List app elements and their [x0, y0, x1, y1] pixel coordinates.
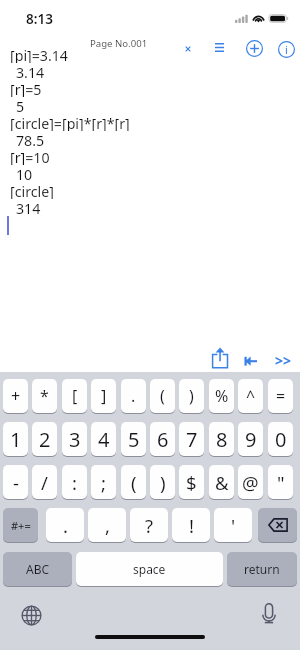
staticText: * — [40, 385, 49, 407]
staticText: & — [215, 470, 229, 495]
staticText: 314 — [16, 199, 41, 216]
button[interactable]: - — [3, 465, 28, 500]
staticText: 8:13 — [26, 10, 53, 28]
staticText: " — [277, 470, 285, 495]
button[interactable]: 0 — [268, 422, 293, 457]
staticText: [r]=5 — [10, 80, 42, 97]
staticText: 1 — [10, 426, 22, 453]
staticText: % — [215, 385, 229, 407]
button[interactable]: 3 — [62, 422, 87, 457]
button[interactable]: . — [46, 508, 84, 543]
button[interactable]: ! — [172, 508, 210, 543]
button[interactable]: ( — [121, 465, 146, 500]
button[interactable]: ) — [179, 379, 204, 414]
staticText: ' — [231, 513, 236, 538]
staticText: ] — [101, 385, 107, 407]
staticText: , — [105, 513, 110, 538]
staticText: 10 — [16, 165, 33, 182]
staticText: 9 — [245, 426, 257, 453]
button[interactable]: 5 — [121, 422, 146, 457]
staticText: [r]=10 — [10, 148, 50, 165]
staticText: . — [131, 385, 136, 407]
staticText: Page No.001 — [90, 37, 148, 50]
staticText: 7 — [186, 426, 198, 453]
staticText: + — [11, 385, 21, 407]
staticText: ) — [189, 385, 194, 407]
staticText: 78.5 — [16, 131, 45, 148]
staticText: ABC — [26, 561, 50, 577]
button[interactable]: & — [209, 465, 234, 500]
staticText: 5 — [128, 426, 140, 453]
staticText: 4 — [98, 426, 110, 453]
button[interactable]: Menu — [208, 36, 230, 58]
staticText: [circle] — [10, 182, 54, 199]
staticText: 6 — [157, 426, 169, 453]
button[interactable]: Dictation — [256, 602, 281, 627]
staticText: ) — [160, 470, 166, 495]
button[interactable]: Next field — [272, 350, 294, 370]
button[interactable]: 4 — [91, 422, 116, 457]
button[interactable]: ' — [214, 508, 252, 543]
staticText: $ — [186, 470, 197, 495]
button[interactable]: #+= — [3, 508, 38, 543]
staticText: [circle]=[pi]*[r]*[r] — [10, 114, 130, 131]
staticText: return — [244, 561, 280, 577]
button[interactable]: * — [32, 379, 57, 414]
button[interactable]: 2 — [32, 422, 57, 457]
button[interactable]: Close — [177, 38, 198, 59]
button[interactable]: 8 — [209, 422, 234, 457]
button[interactable]: % — [209, 379, 234, 414]
staticText: space — [133, 561, 166, 577]
button[interactable]: / — [32, 465, 57, 500]
button[interactable]: " — [268, 465, 293, 500]
staticText: 5 — [16, 97, 25, 114]
button[interactable]: ? — [130, 508, 168, 543]
staticText: = — [276, 385, 286, 407]
staticText: - — [13, 470, 19, 495]
button[interactable]: 6 — [150, 422, 175, 457]
button[interactable]: Info — [275, 38, 297, 60]
button[interactable]: Previous field — [242, 353, 260, 370]
staticText: 3 — [69, 426, 81, 453]
button[interactable]: : — [62, 465, 87, 500]
button[interactable]: = — [268, 379, 293, 414]
staticText: 8 — [216, 426, 228, 453]
button[interactable]: . — [121, 379, 146, 414]
staticText: / — [41, 470, 48, 495]
staticText: ( — [160, 385, 165, 407]
staticText: . — [63, 513, 68, 538]
button[interactable]: 7 — [179, 422, 204, 457]
staticText: ^ — [246, 385, 256, 407]
button[interactable]: ] — [91, 379, 116, 414]
staticText: #+= — [11, 518, 31, 533]
button[interactable]: Change keyboard — [19, 603, 44, 628]
button[interactable]: return — [227, 552, 297, 587]
staticText: ? — [145, 513, 154, 538]
button[interactable]: ^ — [238, 379, 263, 414]
button[interactable]: space — [76, 552, 223, 587]
staticText: >> — [275, 351, 292, 370]
staticText: 2 — [39, 426, 51, 453]
button[interactable]: ; — [91, 465, 116, 500]
staticText: ( — [131, 470, 137, 495]
staticText: @ — [242, 470, 259, 495]
staticText: 0 — [275, 426, 287, 453]
staticText: [ — [72, 385, 78, 407]
button[interactable]: 1 — [3, 422, 28, 457]
button[interactable]: @ — [238, 465, 263, 500]
button[interactable]: Add — [243, 37, 265, 59]
button[interactable]: Share — [208, 344, 232, 372]
button[interactable]: ABC — [3, 552, 72, 587]
staticText: ! — [189, 513, 194, 538]
button[interactable]: $ — [179, 465, 204, 500]
button[interactable]: ) — [150, 465, 175, 500]
staticText: ; — [101, 470, 106, 495]
button[interactable]: ( — [150, 379, 175, 414]
button[interactable]: + — [3, 379, 28, 414]
button[interactable]: Backspace — [258, 508, 297, 543]
button[interactable]: [ — [62, 379, 87, 414]
button[interactable]: 9 — [238, 422, 263, 457]
button[interactable]: , — [88, 508, 126, 543]
staticText: : — [72, 470, 77, 495]
staticText: [pi]=3.14 — [10, 46, 68, 63]
